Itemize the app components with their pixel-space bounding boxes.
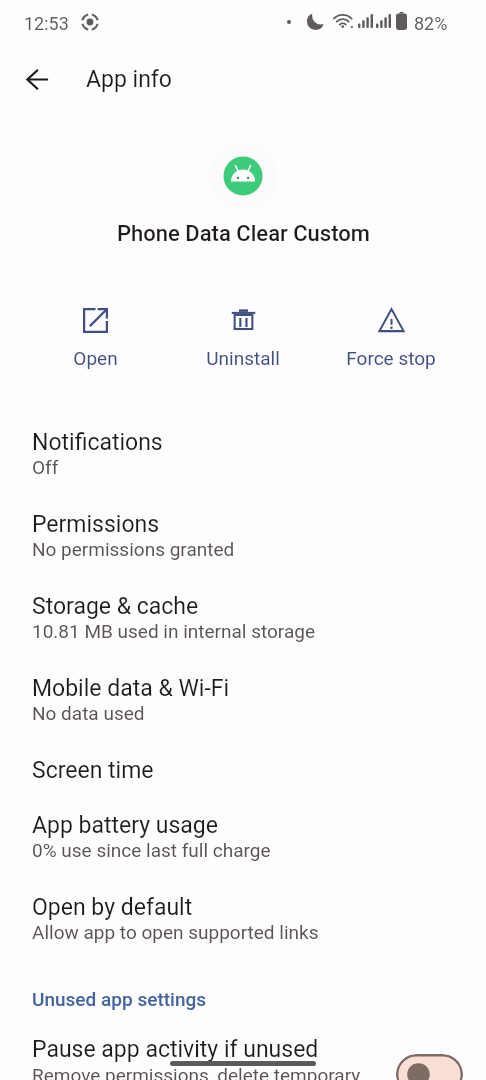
staticText: App info xyxy=(86,66,172,93)
button[interactable]: Uninstall xyxy=(169,306,317,371)
button[interactable]: Unused app settings xyxy=(0,980,486,1018)
staticText: Open by default xyxy=(32,894,193,921)
button[interactable]: Open xyxy=(21,306,169,371)
button[interactable]: App battery usage xyxy=(0,799,486,881)
staticText: Off xyxy=(32,456,59,478)
staticText: 82% xyxy=(414,13,448,34)
button[interactable]: Permissions xyxy=(0,498,486,580)
staticText: Unused app settings xyxy=(32,988,207,1010)
staticText: Pause app activity if unused xyxy=(32,1036,319,1063)
staticText: Force stop xyxy=(346,347,436,369)
button[interactable]: Pause app activity toggle xyxy=(396,1054,463,1080)
staticText: App battery usage xyxy=(32,812,218,839)
button[interactable]: Force stop xyxy=(317,306,465,371)
staticText: Notifications xyxy=(32,429,163,456)
staticText: Open xyxy=(73,347,118,369)
staticText: Storage & cache xyxy=(32,593,199,620)
staticText: Remove permissions, delete temporary xyxy=(32,1064,361,1080)
staticText: Phone Data Clear Custom xyxy=(117,221,370,247)
staticText: No permissions granted xyxy=(32,538,235,560)
staticText: 12:53 xyxy=(24,13,69,34)
staticText: Permissions xyxy=(32,511,160,538)
staticText: Screen time xyxy=(32,757,154,784)
button[interactable]: Back xyxy=(15,57,60,102)
button[interactable]: Pause app activity if unused xyxy=(0,1018,486,1080)
button[interactable]: Open by default xyxy=(0,881,486,963)
staticText: Uninstall xyxy=(206,347,280,369)
button[interactable]: Mobile data & Wi-Fi xyxy=(0,662,486,744)
button[interactable]: Notifications xyxy=(0,416,486,498)
staticText: Allow app to open supported links xyxy=(32,921,319,943)
staticText: No data used xyxy=(32,702,145,724)
button[interactable]: Storage & cache xyxy=(0,580,486,662)
staticText: 10.81 MB used in internal storage xyxy=(32,620,316,642)
staticText: Mobile data & Wi-Fi xyxy=(32,675,230,702)
button[interactable]: Screen time xyxy=(0,744,486,799)
staticText: 0% use since last full charge xyxy=(32,839,271,861)
